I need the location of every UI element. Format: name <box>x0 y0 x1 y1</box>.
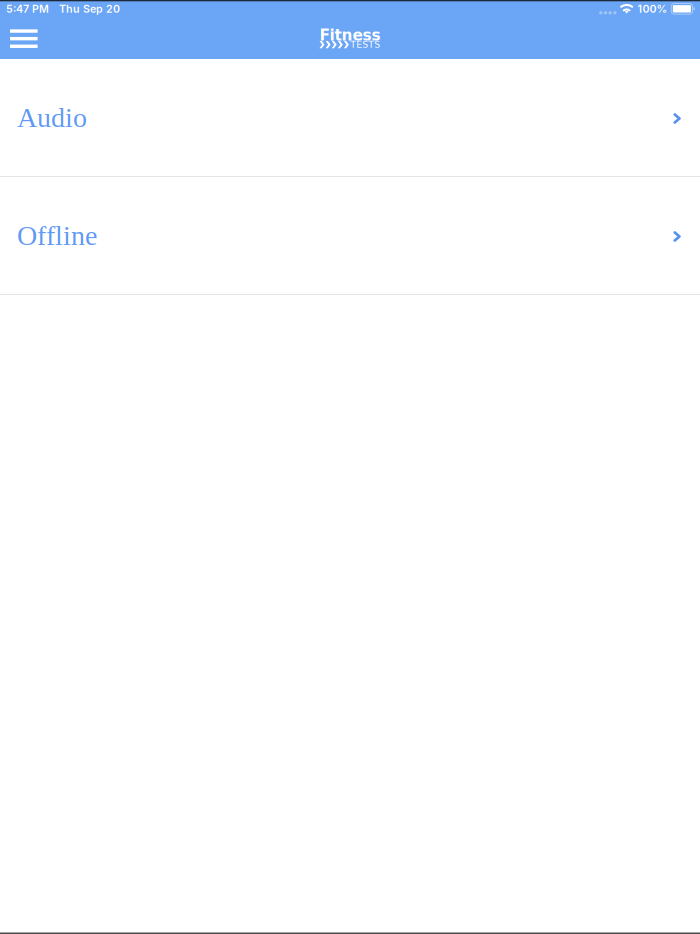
staticText: 100% <box>638 2 668 15</box>
staticText: Fitness <box>319 26 380 44</box>
staticText: Thu Sep 20 <box>59 2 120 15</box>
button[interactable]: Audio <box>0 59 700 177</box>
staticText: 5:47 PM <box>6 2 49 15</box>
staticText: Audio <box>17 102 87 133</box>
staticText: Offline <box>17 220 97 251</box>
button[interactable]: Menu <box>0 16 48 59</box>
staticText: TESTS <box>350 39 380 50</box>
button[interactable]: Offline <box>0 177 700 295</box>
